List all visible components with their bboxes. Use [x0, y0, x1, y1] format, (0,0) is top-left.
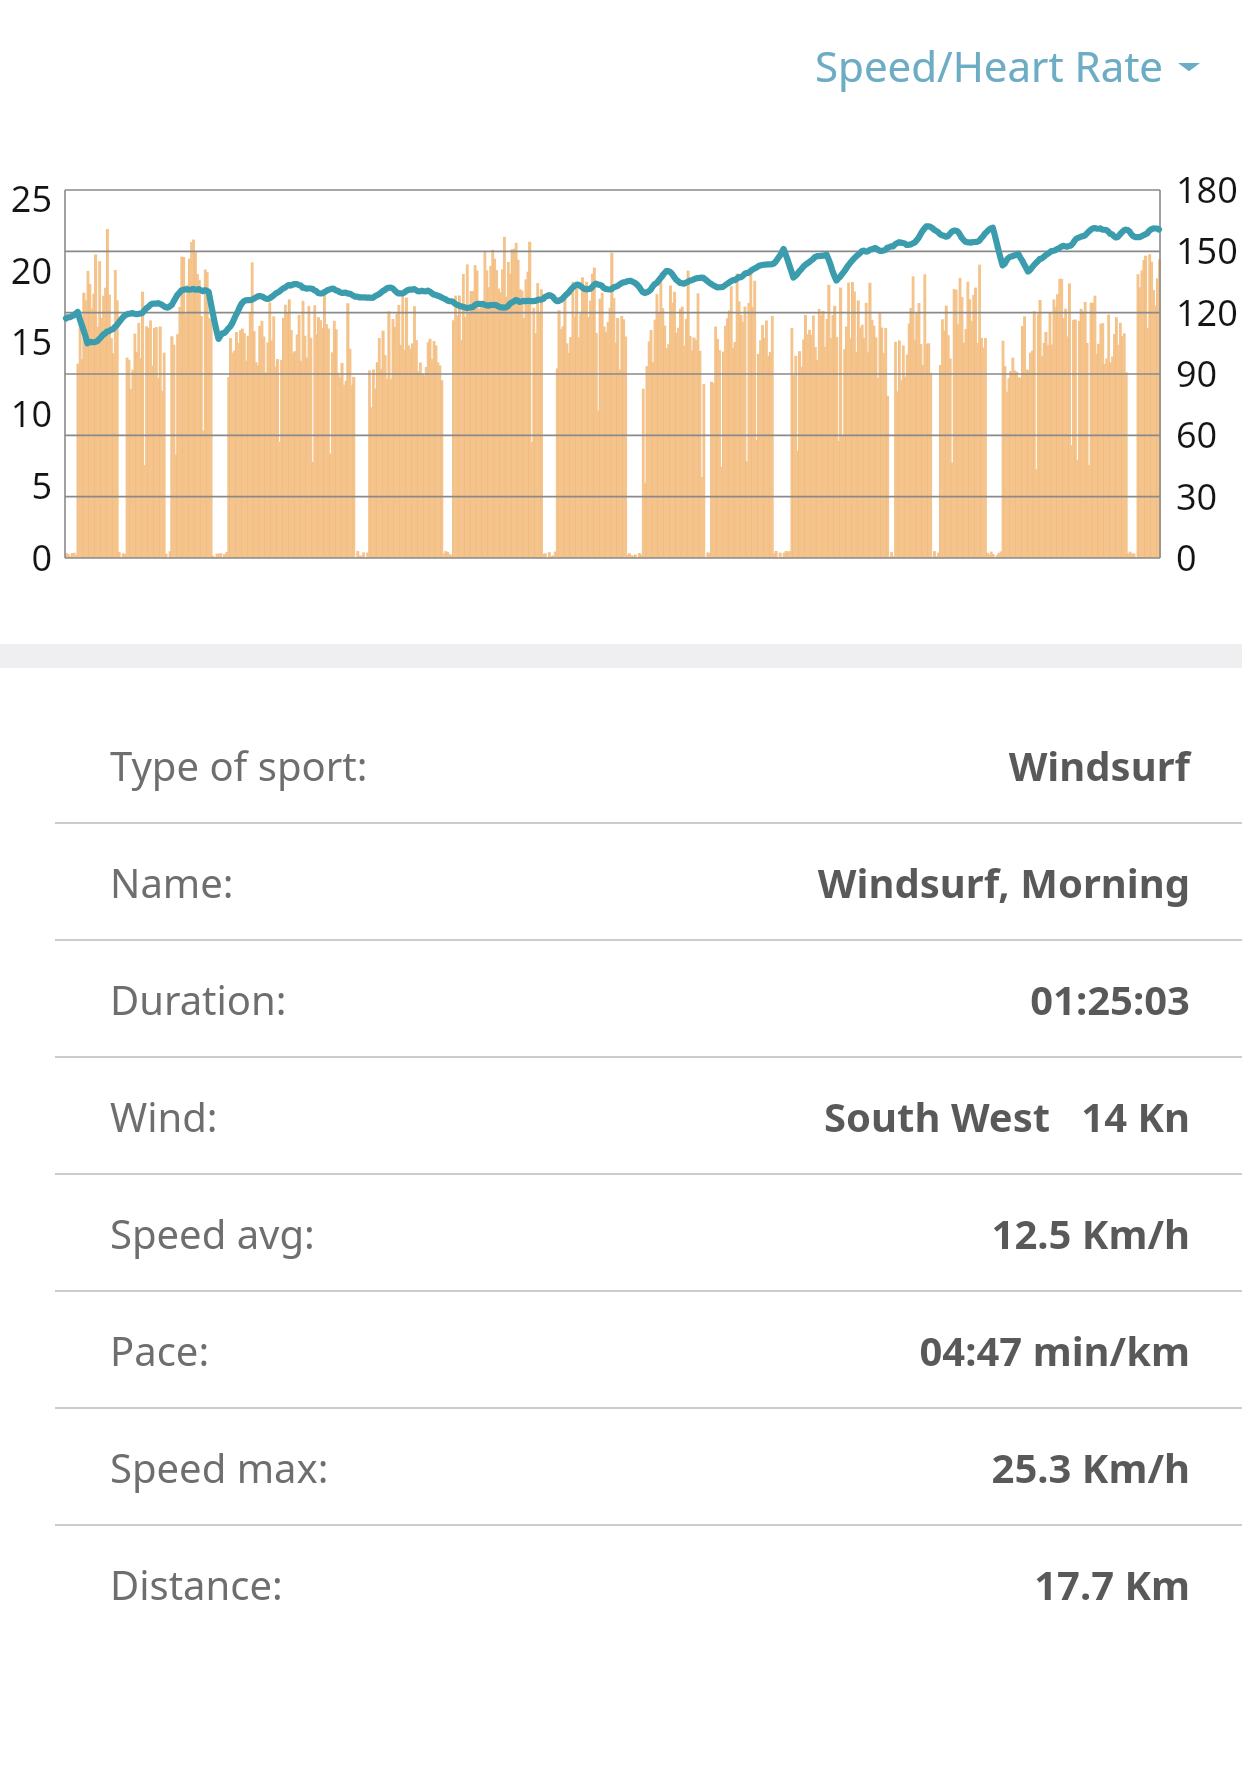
staticText: 10 [10, 389, 52, 438]
staticText: 30 [1176, 472, 1218, 521]
staticText: 0 [31, 533, 52, 582]
button[interactable]: Type of sport: [0, 707, 1242, 822]
staticText: 90 [1176, 349, 1218, 398]
staticText: 15 [10, 317, 52, 366]
other: Change chart type [1178, 55, 1200, 77]
staticText: 12.5 Km/h [991, 1206, 1190, 1260]
button[interactable]: Pace: [0, 1290, 1242, 1407]
staticText: Speed avg: [110, 1206, 315, 1260]
staticText: Distance: [110, 1557, 283, 1611]
button[interactable]: Speed avg: [0, 1173, 1242, 1290]
staticText: Wind: [110, 1089, 218, 1143]
staticText: 17.7 Km [1034, 1557, 1190, 1611]
staticText: 25.3 Km/h [991, 1440, 1190, 1494]
staticText: Pace: [110, 1323, 210, 1377]
staticText: 25 [10, 174, 52, 223]
staticText: Windsurf, Morning [817, 855, 1190, 909]
staticText: South West 14 Kn [824, 1089, 1190, 1143]
staticText: 04:47 min/km [919, 1323, 1190, 1377]
staticText: 150 [1176, 226, 1238, 275]
button[interactable]: Distance: [0, 1524, 1242, 1641]
button[interactable]: Name: [0, 822, 1242, 939]
staticText: Duration: [110, 972, 287, 1026]
staticText: Speed max: [110, 1440, 329, 1494]
staticText: Windsurf [1008, 738, 1190, 792]
button[interactable]: Wind: [0, 1056, 1242, 1173]
staticText: 5 [31, 461, 52, 510]
staticText: 180 [1176, 165, 1238, 214]
staticText: Type of sport: [110, 738, 368, 792]
staticText: Speed/Heart Rate [815, 37, 1164, 94]
staticText: 20 [10, 246, 52, 295]
button[interactable]: Speed/Heart Rate [807, 27, 1208, 104]
button[interactable]: Duration: [0, 939, 1242, 1056]
staticText: 60 [1176, 410, 1218, 459]
staticText: 0 [1176, 533, 1197, 582]
staticText: 120 [1176, 288, 1238, 337]
staticText: Name: [110, 855, 234, 909]
staticText: 01:25:03 [1030, 972, 1190, 1026]
button[interactable]: Speed max: [0, 1407, 1242, 1524]
